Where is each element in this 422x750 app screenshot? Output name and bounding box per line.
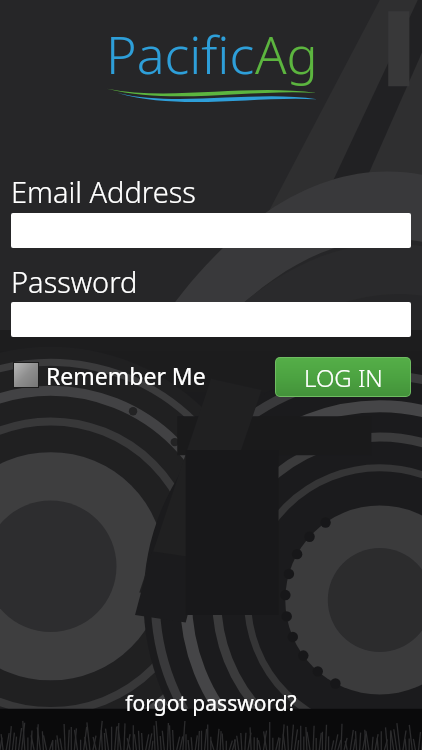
staticText: forgot password? <box>125 689 297 718</box>
button[interactable]: forgot password? <box>115 686 307 721</box>
staticText: Pacific <box>106 18 255 89</box>
staticText: Remember Me <box>46 360 206 391</box>
button[interactable]: LOG IN <box>276 358 410 396</box>
staticText: LOG IN <box>304 361 383 394</box>
staticText: Password <box>11 262 138 301</box>
staticText: Ag <box>255 18 318 89</box>
staticText: Email Address <box>11 172 196 211</box>
button[interactable]: Remember Me <box>13 358 212 392</box>
